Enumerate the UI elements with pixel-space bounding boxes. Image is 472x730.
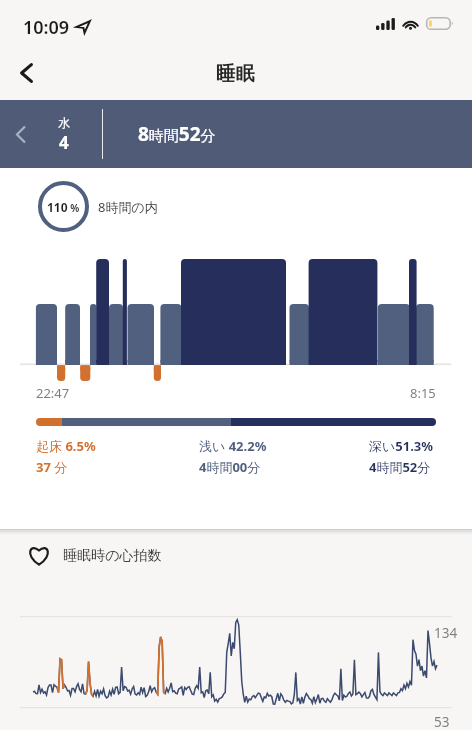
staticText: 起床 6.5% xyxy=(36,437,96,455)
button[interactable]: Back xyxy=(6,46,46,100)
staticText: 4時間00分 xyxy=(199,458,261,476)
staticText: 22:47 xyxy=(36,384,70,402)
staticText: 37 分 xyxy=(36,458,68,476)
staticText: 4時間52分 xyxy=(369,458,431,476)
staticText: 8時間52分 xyxy=(138,121,216,147)
staticText: 110 % xyxy=(47,199,80,215)
staticText: 53 xyxy=(434,713,450,730)
staticText: 水 xyxy=(58,115,70,130)
staticText: 深い51.3% xyxy=(369,437,433,455)
staticText: 8時間の内 xyxy=(98,198,158,216)
button[interactable]: Previous day xyxy=(0,100,42,168)
staticText: 134 xyxy=(434,624,458,642)
staticText: 睡眠時の心拍数 xyxy=(63,547,162,565)
staticText: 8:15 xyxy=(410,384,436,402)
staticText: 4 xyxy=(59,131,69,154)
staticText: 10:09 xyxy=(23,15,70,40)
staticText: 睡眠 xyxy=(216,62,256,86)
staticText: 浅い 42.2% xyxy=(199,437,267,455)
